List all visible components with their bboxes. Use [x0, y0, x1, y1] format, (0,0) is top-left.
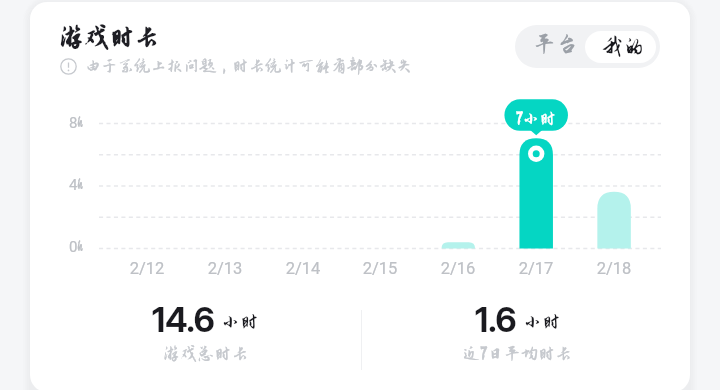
staticText: 2/13 [195, 259, 255, 278]
staticText: 14.6 [152, 299, 215, 340]
staticText: 1.6 [475, 299, 517, 340]
staticText: 平台 [533, 32, 579, 58]
staticText: 0h [69, 238, 83, 256]
staticText: 2/15 [350, 259, 410, 278]
staticText: 2/14 [273, 259, 333, 278]
button[interactable]: 平台 [515, 25, 585, 68]
staticText: 我的 [601, 34, 646, 58]
staticText: 2/16 [428, 259, 488, 278]
staticText: 小时 [523, 312, 561, 333]
staticText: 近7日平均时长 [463, 344, 573, 363]
staticText: 游戏时长 [59, 23, 160, 51]
staticText: 4h [69, 176, 83, 194]
staticText: 2/17 [506, 259, 566, 278]
staticText: 游戏总时长 [163, 344, 249, 363]
staticText: 2/18 [584, 259, 644, 278]
staticText: 由于系统上报问题，时长统计可能有部分缺失 [85, 57, 413, 75]
staticText: 7小时 [504, 109, 568, 128]
button[interactable]: 我的 [585, 31, 656, 63]
staticText: 小时 [221, 312, 259, 333]
staticText: 2/12 [117, 259, 177, 278]
staticText: 8h [69, 114, 83, 132]
